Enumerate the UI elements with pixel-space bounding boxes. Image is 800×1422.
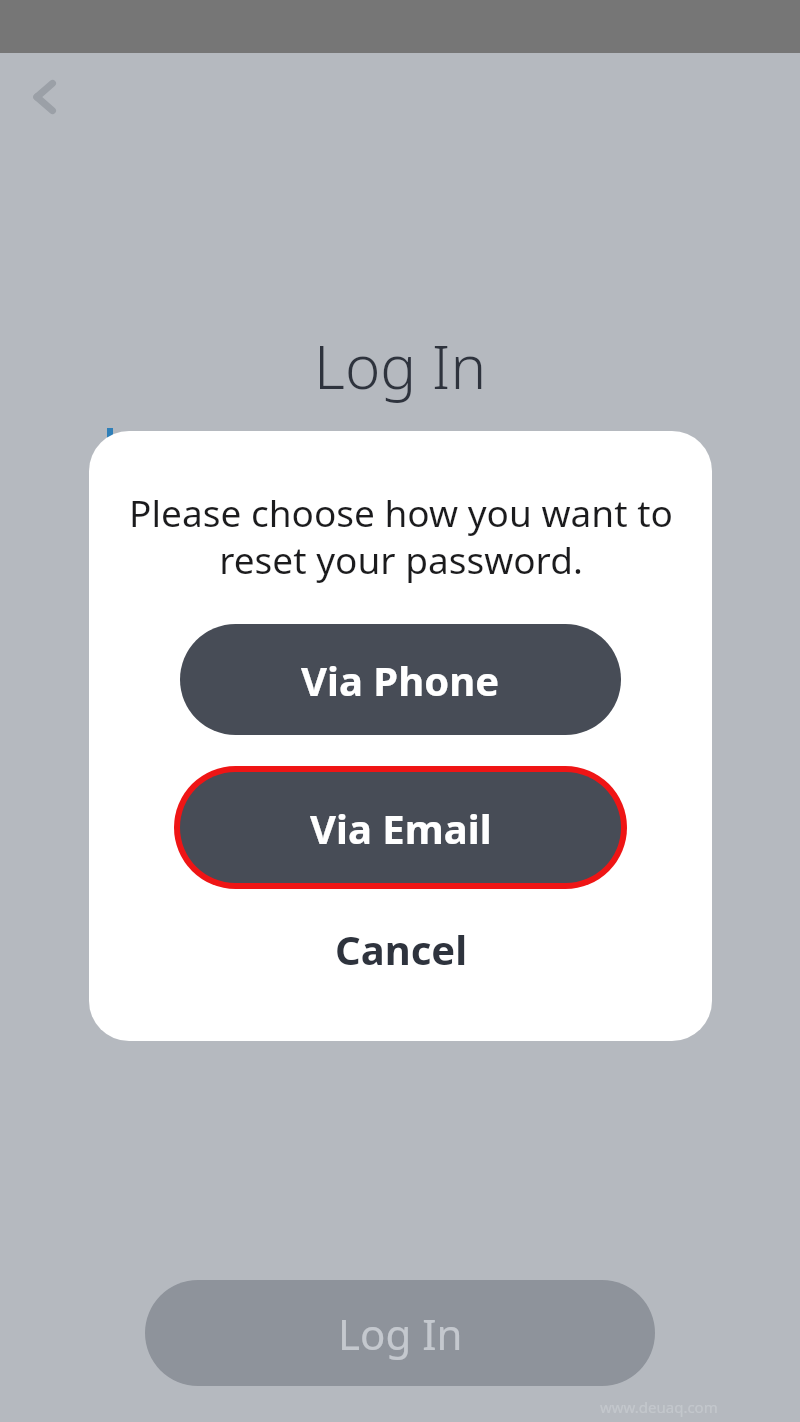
- staticText: Via Email: [310, 801, 492, 855]
- button[interactable]: Cancel: [251, 906, 551, 992]
- staticText: www.deuaq.com: [600, 1397, 718, 1417]
- button[interactable]: Back: [12, 64, 78, 130]
- staticText: Log In: [338, 1305, 463, 1362]
- staticText: Log In: [314, 325, 487, 407]
- button[interactable]: Log In: [145, 1280, 655, 1386]
- staticText: Cancel: [335, 922, 468, 976]
- button[interactable]: Via Phone: [180, 624, 621, 735]
- staticText: Via Phone: [301, 653, 500, 707]
- button[interactable]: Via Email: [180, 772, 621, 883]
- staticText: Please choose how you want to reset your…: [129, 487, 673, 585]
